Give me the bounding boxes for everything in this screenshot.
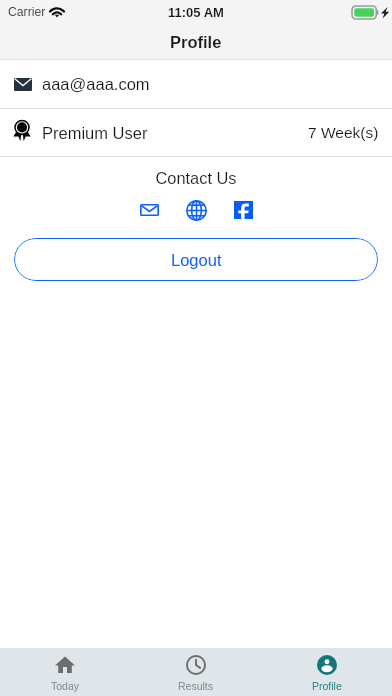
- button[interactable]: aaa@aaa.com: [0, 60, 392, 108]
- staticText: Contact Us: [0, 169, 392, 187]
- button[interactable]: Profile tab: [261, 648, 392, 696]
- button[interactable]: Facebook: [228, 198, 258, 222]
- staticText: Carrier: [8, 5, 46, 19]
- staticText: aaa@aaa.com: [42, 75, 150, 93]
- staticText: Today: [51, 680, 80, 692]
- staticText: Profile: [170, 33, 222, 51]
- staticText: 11:05 AM: [168, 5, 224, 20]
- staticText: Logout: [171, 251, 222, 269]
- button[interactable]: Logout: [14, 238, 378, 281]
- button[interactable]: Email us: [134, 198, 164, 222]
- staticText: Profile: [312, 680, 342, 692]
- button[interactable]: Visit website: [181, 198, 211, 222]
- button[interactable]: Premium User: [0, 109, 392, 156]
- staticText: Results: [178, 680, 214, 692]
- staticText: 7 Week(s): [308, 124, 379, 141]
- button[interactable]: Today tab: [0, 648, 130, 696]
- staticText: Premium User: [42, 124, 148, 142]
- button[interactable]: Results tab: [130, 648, 261, 696]
